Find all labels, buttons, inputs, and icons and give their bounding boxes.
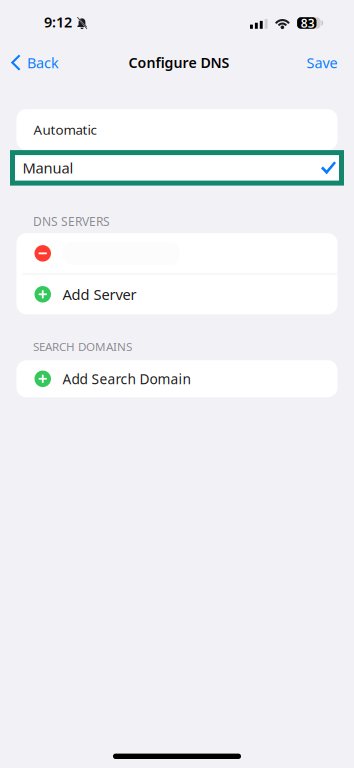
staticText: Manual [22, 158, 73, 178]
staticText: Add Server [62, 284, 136, 304]
staticText: Save [306, 53, 337, 72]
button[interactable]: Save [298, 46, 354, 80]
staticText: Configure DNS [128, 53, 229, 72]
button[interactable]: Back [0, 46, 67, 80]
staticText: DNS SERVERS [33, 213, 110, 230]
staticText: 83 [301, 15, 315, 31]
staticText: 9:12 [44, 12, 72, 32]
staticText: SEARCH DOMAINS [33, 338, 132, 354]
button[interactable]: Add Server [16, 274, 337, 314]
button[interactable]: Automatic [0, 109, 354, 150]
staticText: Back [27, 53, 59, 72]
staticText: Add Search Domain [62, 369, 190, 388]
button[interactable]: Manual [0, 150, 354, 186]
button[interactable]: Add Search Domain [0, 360, 354, 397]
staticText: Automatic [33, 120, 96, 139]
button[interactable] [16, 233, 337, 274]
